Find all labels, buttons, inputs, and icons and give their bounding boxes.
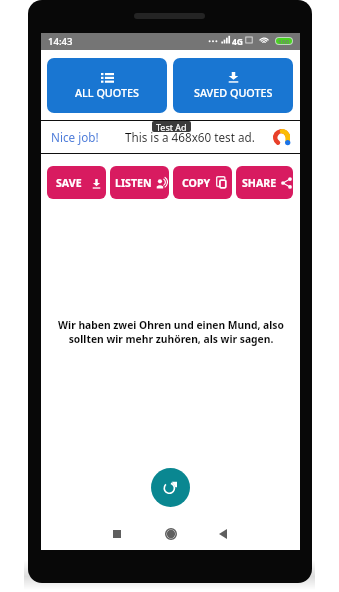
staticText: SHARE — [242, 176, 277, 190]
staticText: This is a 468x60 test ad. — [125, 129, 255, 145]
staticText: COPY — [182, 176, 211, 190]
button[interactable]: LISTEN — [110, 166, 169, 199]
staticText: SAVED QUOTES — [194, 85, 273, 100]
button[interactable]: Back — [207, 517, 239, 550]
button[interactable]: Recent apps — [101, 517, 133, 550]
button[interactable]: SAVED QUOTES — [173, 58, 293, 113]
staticText: 100 — [278, 38, 290, 44]
staticText: ALL QUOTES — [75, 85, 140, 100]
button[interactable]: ALL QUOTES — [47, 58, 167, 113]
staticText: 4G — [232, 36, 244, 48]
button[interactable]: SHARE — [236, 166, 293, 199]
button[interactable]: Refresh quote — [151, 468, 190, 507]
button[interactable]: SAVE — [47, 166, 106, 199]
staticText: LISTEN — [115, 176, 152, 190]
staticText: 14:43 — [48, 35, 73, 48]
button[interactable]: COPY — [173, 166, 232, 199]
staticText: SAVE — [56, 176, 82, 190]
button[interactable]: Home — [155, 517, 187, 550]
staticText: Nice job! — [51, 129, 99, 145]
staticText: Wir haben zwei Ohren und einen Mund, als… — [55, 318, 287, 346]
staticText: Test Ad — [156, 121, 187, 132]
